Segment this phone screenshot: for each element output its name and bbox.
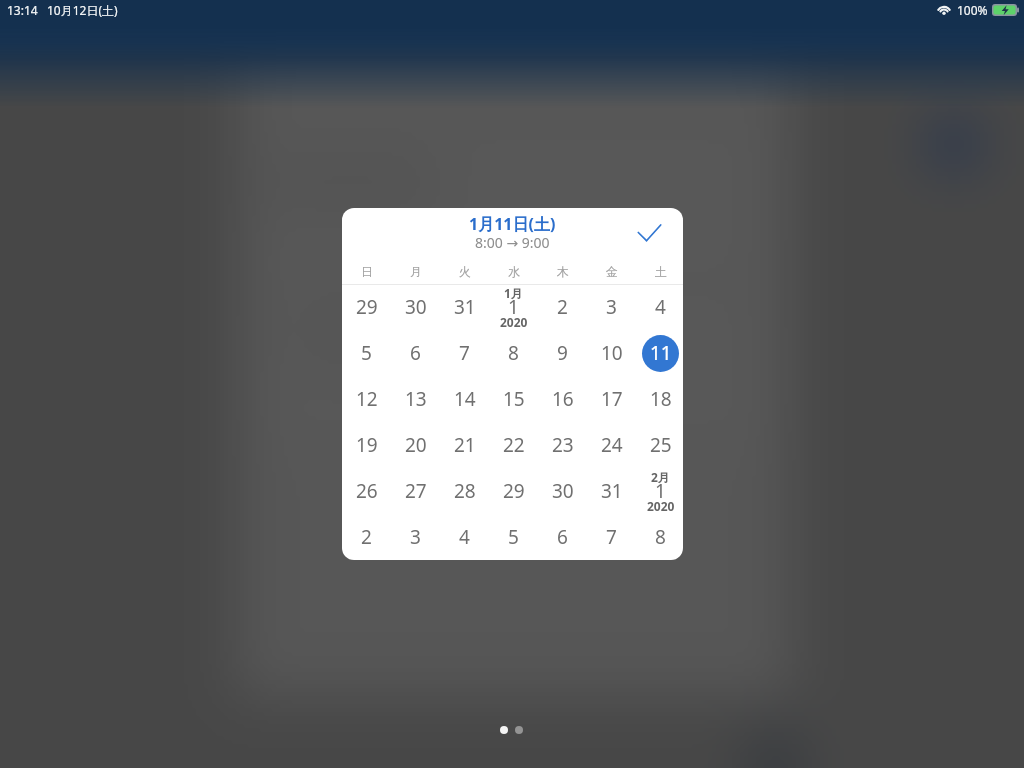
staticText: 10 xyxy=(601,340,623,366)
staticText: 8 xyxy=(655,524,666,550)
button[interactable]: 4 xyxy=(440,514,489,560)
staticText: 6 xyxy=(557,524,568,550)
staticText: 31 xyxy=(601,478,623,504)
staticText: 21 xyxy=(454,432,476,458)
staticText: 29 xyxy=(356,294,378,320)
button[interactable]: 7 xyxy=(440,330,489,376)
staticText: 100% xyxy=(957,2,988,18)
button[interactable]: 22 xyxy=(489,422,538,468)
staticText: 1月 xyxy=(504,285,523,301)
staticText: 3 xyxy=(410,524,421,550)
button[interactable]: 14 xyxy=(440,376,489,422)
staticText: 17 xyxy=(601,386,623,412)
button[interactable]: 13 xyxy=(391,376,440,422)
staticText: 4 xyxy=(655,294,666,320)
staticText: 30 xyxy=(405,294,427,320)
staticText: 13:14 xyxy=(7,2,38,18)
button[interactable]: 23 xyxy=(538,422,587,468)
staticText: 3 xyxy=(606,294,617,320)
button[interactable]: 9 xyxy=(538,330,587,376)
staticText: 月 xyxy=(410,264,422,279)
staticText: 13 xyxy=(405,386,427,412)
button[interactable]: 31 xyxy=(587,468,636,514)
staticText: 27 xyxy=(405,478,427,504)
button[interactable]: 3 xyxy=(391,514,440,560)
button[interactable]: 7 xyxy=(587,514,636,560)
button[interactable]: 17 xyxy=(587,376,636,422)
button[interactable]: 30 xyxy=(538,468,587,514)
staticText: 24 xyxy=(601,432,623,458)
staticText: 23 xyxy=(552,432,574,458)
button[interactable]: 10 xyxy=(587,330,636,376)
staticText: 金 xyxy=(606,264,618,279)
staticText: 2020 xyxy=(500,314,528,330)
staticText: 8:00 → 9:00 xyxy=(475,233,550,252)
staticText: 11 xyxy=(650,340,672,366)
staticText: 19 xyxy=(356,432,378,458)
button[interactable]: 29 xyxy=(342,284,391,330)
button[interactable]: 1月 xyxy=(489,284,538,330)
staticText: 22 xyxy=(503,432,525,458)
staticText: 6 xyxy=(410,340,421,366)
button[interactable]: 4 xyxy=(636,284,683,330)
staticText: 20 xyxy=(405,432,427,458)
staticText: 土 xyxy=(655,264,667,279)
button[interactable]: 2月 xyxy=(636,468,683,514)
staticText: 9 xyxy=(557,340,568,366)
button[interactable]: 25 xyxy=(636,422,683,468)
staticText: 1 xyxy=(508,294,519,320)
button[interactable]: 5 xyxy=(489,514,538,560)
button[interactable]: Done xyxy=(620,212,664,256)
staticText: 31 xyxy=(454,294,476,320)
staticText: 15 xyxy=(503,386,525,412)
staticText: 2 xyxy=(557,294,568,320)
button[interactable]: 19 xyxy=(342,422,391,468)
staticText: 2 xyxy=(361,524,372,550)
staticText: 木 xyxy=(557,264,569,279)
staticText: 25 xyxy=(650,432,672,458)
staticText: 日 xyxy=(361,264,373,279)
staticText: 2月 xyxy=(651,469,670,485)
button[interactable]: 16 xyxy=(538,376,587,422)
button[interactable]: 29 xyxy=(489,468,538,514)
staticText: 28 xyxy=(454,478,476,504)
staticText: 2020 xyxy=(647,498,675,514)
button[interactable]: 2 xyxy=(342,514,391,560)
button[interactable]: 26 xyxy=(342,468,391,514)
staticText: 5 xyxy=(361,340,372,366)
button[interactable]: 3 xyxy=(587,284,636,330)
staticText: 7 xyxy=(459,340,470,366)
button[interactable]: 28 xyxy=(440,468,489,514)
button[interactable]: 24 xyxy=(587,422,636,468)
staticText: 26 xyxy=(356,478,378,504)
button[interactable]: 6 xyxy=(391,330,440,376)
button[interactable]: 15 xyxy=(489,376,538,422)
staticText: 29 xyxy=(503,478,525,504)
button[interactable]: 6 xyxy=(538,514,587,560)
staticText: 14 xyxy=(454,386,476,412)
button[interactable]: 5 xyxy=(342,330,391,376)
staticText: 18 xyxy=(650,386,672,412)
staticText: 7 xyxy=(606,524,617,550)
staticText: 5 xyxy=(508,524,519,550)
button[interactable]: 30 xyxy=(391,284,440,330)
button[interactable]: 21 xyxy=(440,422,489,468)
button[interactable]: 27 xyxy=(391,468,440,514)
staticText: 火 xyxy=(459,264,471,279)
button[interactable]: 12 xyxy=(342,376,391,422)
staticText: 8 xyxy=(508,340,519,366)
button[interactable]: 11 xyxy=(636,330,683,376)
button[interactable]: 8 xyxy=(636,514,683,560)
staticText: 12 xyxy=(356,386,378,412)
staticText: 30 xyxy=(552,478,574,504)
staticText: 10月12日(土) xyxy=(47,2,118,18)
staticText: 4 xyxy=(459,524,470,550)
button[interactable]: 8 xyxy=(489,330,538,376)
staticText: 1月11日(土) xyxy=(469,213,556,235)
staticText: 1 xyxy=(655,478,666,504)
button[interactable]: 2 xyxy=(538,284,587,330)
button[interactable]: 20 xyxy=(391,422,440,468)
staticText: 16 xyxy=(552,386,574,412)
button[interactable]: 18 xyxy=(636,376,683,422)
button[interactable]: 31 xyxy=(440,284,489,330)
